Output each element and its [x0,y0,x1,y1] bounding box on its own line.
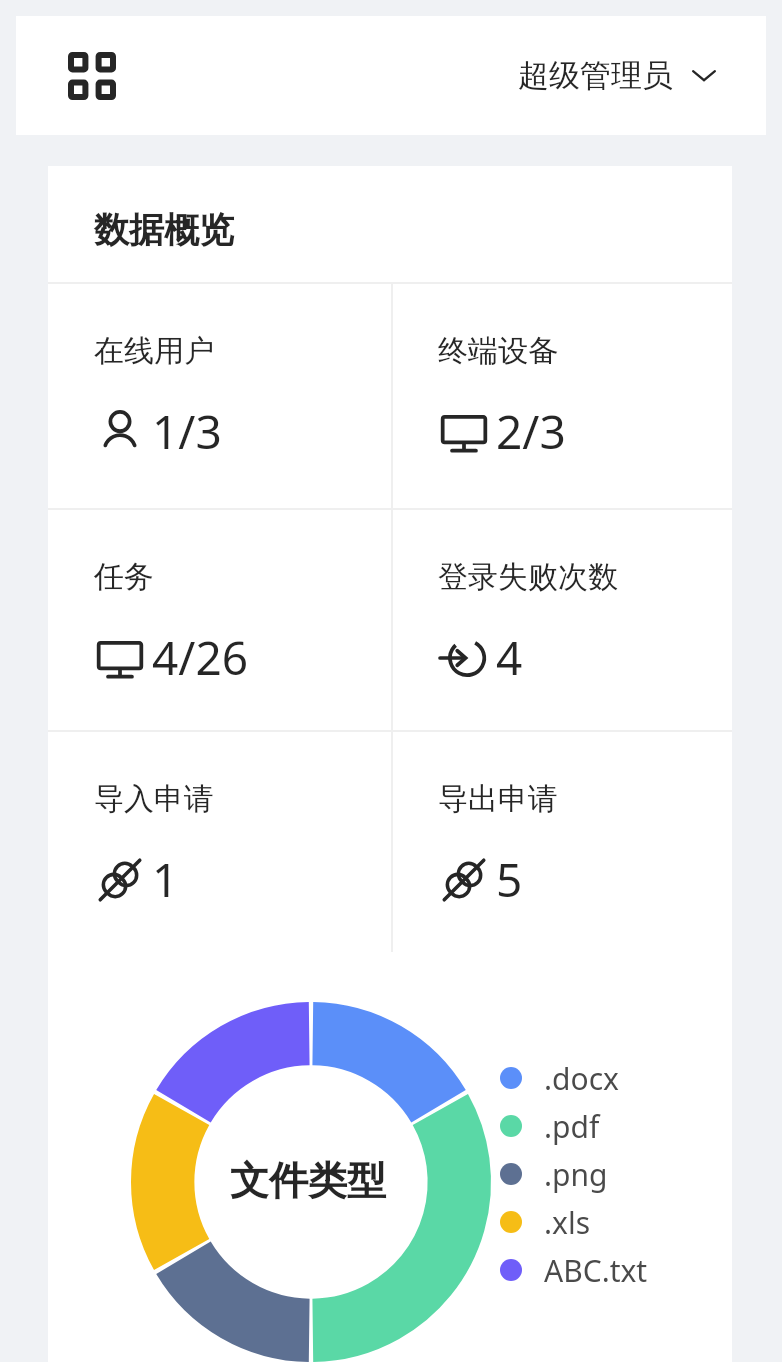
button[interactable]: 任务 [48,508,391,730]
staticText: 5 [496,848,523,911]
staticText: 文件类型 [230,1156,386,1205]
staticText: 4/26 [152,626,249,689]
button[interactable]: 终端设备 [392,282,732,508]
staticText: 2/3 [496,400,566,463]
staticText: 1 [152,848,179,911]
staticText: ABC.txt [544,1250,648,1291]
staticText: .pdf [544,1106,600,1147]
button[interactable]: .xls [500,1200,591,1244]
button[interactable]: Apps menu [62,46,122,106]
staticText: 导入申请 [94,780,214,818]
staticText: 在线用户 [94,332,214,370]
staticText: 登录失败次数 [438,558,618,596]
staticText: .png [544,1154,608,1195]
button[interactable]: ABC.txt [500,1248,648,1292]
staticText: .docx [544,1058,619,1099]
staticText: 数据概览 [94,208,234,252]
button[interactable]: .png [500,1152,608,1196]
staticText: .xls [544,1202,591,1243]
button[interactable]: .pdf [500,1104,600,1148]
staticText: 4 [496,626,523,689]
staticText: 终端设备 [438,332,558,370]
button[interactable]: 导出申请 [392,730,732,952]
button[interactable]: 登录失败次数 [392,508,732,730]
staticText: 任务 [94,558,154,596]
staticText: 1/3 [152,400,222,463]
button[interactable]: 超级管理员 [518,44,717,106]
button[interactable]: 导入申请 [48,730,391,952]
staticText: 超级管理员 [518,56,673,95]
button[interactable]: .docx [500,1056,619,1100]
staticText: 导出申请 [438,780,558,818]
button[interactable]: 在线用户 [48,282,391,508]
